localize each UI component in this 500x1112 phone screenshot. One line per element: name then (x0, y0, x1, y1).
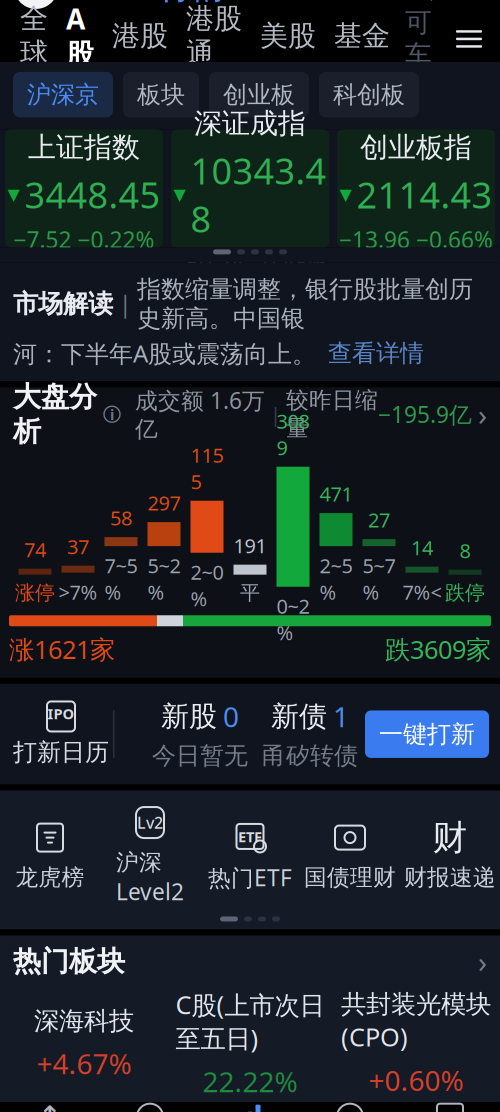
staticText: › (478, 395, 487, 434)
button[interactable]: ∿ (100, 1102, 200, 1112)
staticText: 涨1621家 (9, 632, 115, 666)
staticText: 港股 (112, 19, 168, 53)
staticText: 创业板指 (360, 130, 472, 165)
staticText: | (265, 401, 286, 428)
button[interactable]: 共封装光模块(CPO) (333, 989, 499, 1099)
button[interactable]: 龙虎榜 (0, 820, 100, 891)
button[interactable]: 市场解读 (0, 262, 500, 381)
staticText: ▼ (173, 185, 185, 204)
button[interactable]: 大盘分析 (0, 387, 500, 441)
button[interactable]: 美股 (251, 16, 325, 62)
staticText: 7~5% (104, 552, 137, 605)
button[interactable]: 可车 (399, 6, 438, 72)
button[interactable]: ETF (200, 818, 300, 893)
button[interactable]: ETF (400, 1102, 500, 1112)
button[interactable]: 沪深京 (13, 72, 113, 117)
staticText: −13.96 −0.66% (339, 224, 493, 255)
button[interactable]: 深海科技 (1, 1006, 167, 1082)
staticText: 可车 (405, 6, 432, 72)
button[interactable]: 搜索 (401, 0, 445, 9)
staticText: 0 (223, 698, 239, 735)
staticText: 14 (411, 534, 433, 561)
staticText: ↑ (37, 1100, 62, 1112)
button[interactable]: 行情 (155, 0, 229, 7)
button[interactable]: 创业板 (209, 72, 309, 117)
button[interactable]: A股 (57, 16, 103, 62)
staticText: 指数缩量调整，银行股批量创历史新高。中国银 (137, 274, 473, 333)
staticText: | (113, 289, 137, 319)
staticText: 港股通 (186, 1, 242, 70)
staticText: 沪深Level2 (116, 848, 184, 906)
staticText: ▼ (339, 185, 351, 204)
staticText: 较昨日缩量 (286, 386, 378, 442)
staticText: 行情 (159, 0, 225, 7)
button[interactable]: 上证指数 (5, 129, 163, 247)
button[interactable]: 板块 (123, 72, 199, 117)
button[interactable]: 一键打新 (365, 710, 489, 758)
button[interactable]: 深证成指 (171, 129, 329, 247)
staticText: 大盘分析 (13, 380, 97, 449)
staticText: 河：下半年A股或震荡向上。 (13, 337, 316, 369)
button[interactable]: C股(上市次日至五日) (167, 987, 333, 1100)
staticText: 科创板 (333, 80, 405, 109)
staticText: 297 (147, 490, 180, 516)
staticText: 5~7% (362, 552, 395, 605)
button[interactable]: 行情 (200, 1102, 300, 1112)
staticText: 10343.48 (190, 147, 326, 242)
button[interactable]: 科创板 (319, 72, 419, 117)
button[interactable]: 交易 (300, 1102, 400, 1112)
staticText: ▼ (7, 185, 19, 204)
staticText: 涨停 (15, 581, 55, 605)
button[interactable]: 港股 (103, 16, 177, 62)
button[interactable]: 全部分类 (449, 17, 489, 61)
staticText: 成交额 1.6万亿 (135, 385, 265, 443)
staticText: 3448.45 (24, 171, 160, 218)
staticText: 0~2% (276, 593, 309, 646)
staticText: +0.60% (368, 1062, 463, 1099)
staticText: 跌停 (445, 581, 485, 605)
button[interactable]: 财 (400, 820, 500, 891)
button[interactable]: 国债理财 (300, 820, 400, 891)
staticText: 沪深京 (27, 80, 99, 109)
staticText: 8 (459, 537, 470, 564)
staticText: ∿ (142, 1106, 158, 1112)
button[interactable]: 个人中心 (11, 0, 61, 12)
button[interactable]: 热门板块 (0, 935, 500, 987)
button[interactable]: Lv2 (100, 804, 200, 906)
button[interactable]: 新债 (255, 698, 365, 771)
button[interactable]: 全球 (11, 16, 57, 62)
staticText: 58 (110, 505, 132, 531)
staticText: 龙虎榜 (15, 864, 84, 891)
button[interactable]: 基金 (325, 16, 399, 62)
button[interactable]: 新股 (145, 698, 255, 771)
staticText: 一键打新 (379, 719, 475, 749)
staticText: C股(上市次日至五日) (175, 987, 324, 1055)
staticText: 热门ETF (208, 862, 292, 893)
staticText: ETF (238, 827, 262, 846)
button[interactable]: ↑ (0, 1102, 100, 1112)
staticText: 查看详情 (328, 339, 424, 368)
staticText: Lv2 (137, 812, 163, 833)
button[interactable]: 港股通 (177, 16, 251, 62)
staticText: 今日暂无 (152, 741, 248, 771)
staticText: › (478, 942, 487, 981)
staticText: 国债理财 (304, 864, 396, 891)
staticText: 3089 (276, 408, 309, 461)
staticText: 财 (432, 816, 467, 859)
staticText: 美股 (260, 19, 316, 53)
staticText: 新债 (271, 699, 327, 734)
staticText: 新股 (161, 699, 217, 734)
staticText: 1 (333, 698, 349, 735)
staticText: 74 (24, 536, 46, 563)
button[interactable]: IPO (11, 701, 111, 767)
staticText: −195.9亿 (378, 399, 472, 429)
staticText: 2~5% (319, 552, 352, 605)
staticText: 2~0% (190, 559, 223, 612)
staticText: +4.67% (36, 1045, 131, 1082)
staticText: 上证指数 (28, 130, 140, 165)
button[interactable]: 创业板指 (337, 129, 495, 247)
staticText: 深海科技 (34, 1006, 134, 1037)
